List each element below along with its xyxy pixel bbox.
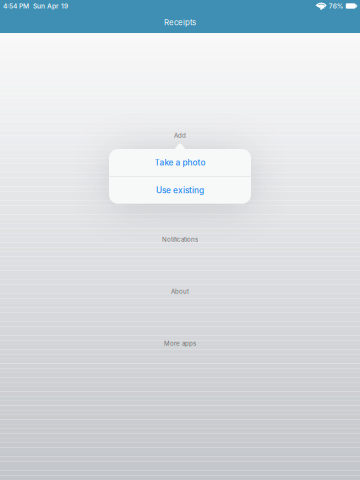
staticText: Add xyxy=(174,132,186,139)
staticText: Notifications xyxy=(162,236,198,243)
staticText: Use existing xyxy=(156,185,204,195)
button[interactable]: Use existing xyxy=(109,177,251,204)
staticText: More apps xyxy=(164,340,196,347)
staticText: 76% xyxy=(329,2,344,10)
staticText: Scan xyxy=(172,184,187,191)
staticText: About xyxy=(171,288,189,295)
staticText: Receipts xyxy=(164,18,196,27)
button[interactable]: About xyxy=(0,285,360,298)
button[interactable]: Notifications xyxy=(0,233,360,246)
button[interactable]: Add xyxy=(0,129,360,142)
staticText: 4:54 PM xyxy=(3,2,29,10)
button[interactable]: Take a photo xyxy=(109,149,251,176)
staticText: Take a photo xyxy=(154,157,205,167)
button[interactable]: Scan xyxy=(0,181,360,194)
button[interactable]: More apps xyxy=(0,337,360,350)
staticText: Sun Apr 19 xyxy=(33,2,68,10)
